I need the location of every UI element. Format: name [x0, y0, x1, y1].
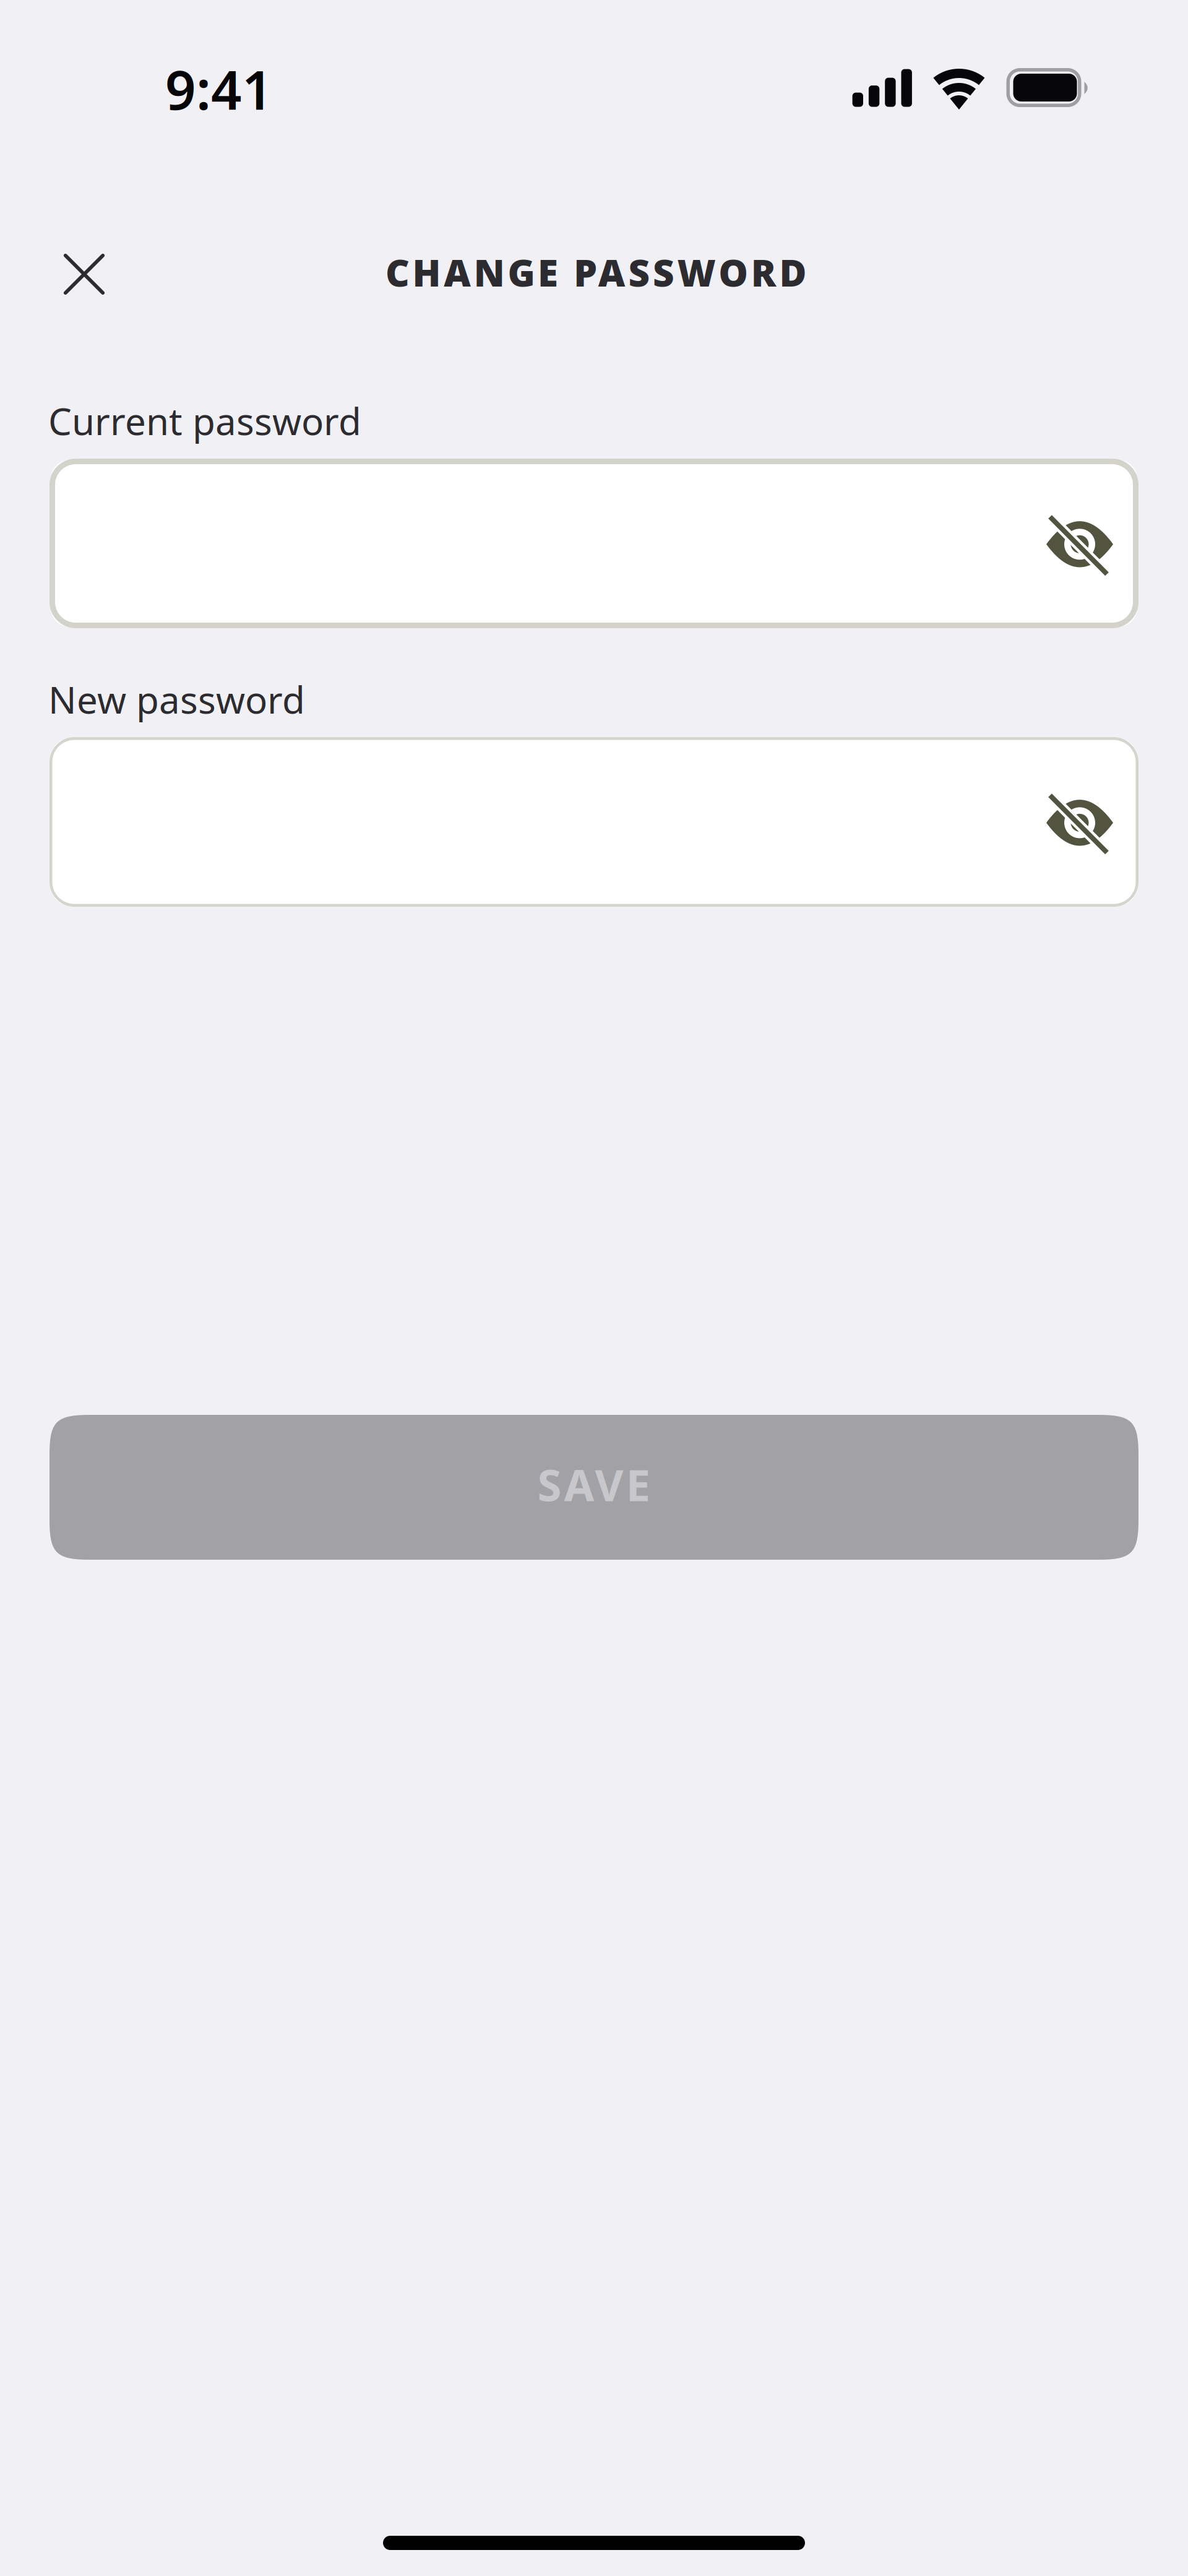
staticText: 9:41 — [165, 53, 273, 124]
staticText: New password — [48, 675, 305, 724]
button[interactable]: Show password — [1033, 456, 1126, 630]
staticText: SAVE — [537, 1455, 651, 1513]
button[interactable]: Close — [27, 217, 142, 332]
button[interactable]: Show password — [1033, 735, 1126, 909]
button[interactable]: SAVE — [49, 1415, 1138, 1560]
staticText: Current password — [48, 396, 361, 445]
staticText: CHANGE PASSWORD — [385, 248, 806, 297]
